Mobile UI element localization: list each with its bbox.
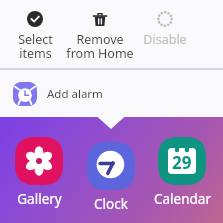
button[interactable]: Gallery — [4, 137, 74, 208]
staticText: Select items — [18, 31, 53, 62]
staticText: Add alarm — [47, 86, 103, 102]
other: Disable — [157, 11, 173, 27]
staticText: Disable — [143, 31, 187, 48]
other: Select items — [27, 11, 43, 27]
button[interactable]: Remove from Home — [67, 0, 132, 68]
button[interactable]: Clock — [76, 142, 146, 213]
staticText: Gallery — [17, 190, 62, 208]
other: Remove from Home — [92, 11, 108, 27]
button[interactable]: Select items — [2, 0, 67, 68]
button[interactable]: 29 — [147, 137, 217, 208]
button[interactable]: Disable — [132, 0, 197, 68]
staticText: 29 — [172, 151, 192, 174]
staticText: Calendar — [154, 190, 211, 208]
staticText: Clock — [94, 195, 128, 213]
button[interactable]: Add alarm — [0, 70, 223, 117]
staticText: Remove from Home — [66, 31, 134, 62]
